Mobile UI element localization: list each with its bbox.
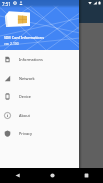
button[interactable]: About — [0, 106, 79, 125]
staticText: 7:51 — [2, 1, 11, 7]
staticText: ver. 2.190 — [4, 41, 19, 45]
button[interactable]: Recent apps — [69, 168, 103, 183]
button[interactable]: Network — [0, 69, 79, 88]
button[interactable]: Device — [0, 87, 79, 106]
staticText: SIM Card Informations — [4, 35, 44, 40]
button[interactable]: Informations — [0, 50, 79, 69]
staticText: Privacy — [19, 131, 32, 136]
staticText: Informations — [19, 57, 43, 62]
button[interactable]: Back — [0, 168, 35, 183]
staticText: About — [19, 113, 30, 118]
staticText: Device — [19, 94, 31, 99]
button[interactable]: Home — [35, 168, 69, 183]
button[interactable]: Privacy — [0, 124, 79, 143]
staticText: Network — [19, 76, 35, 81]
